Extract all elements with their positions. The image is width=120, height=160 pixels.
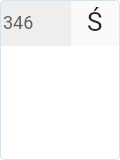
staticText: Ś [87, 7, 103, 37]
button[interactable]: Character Ś [71, 0, 120, 46]
button[interactable]: 346 [0, 0, 71, 46]
staticText: 346 [3, 12, 34, 33]
